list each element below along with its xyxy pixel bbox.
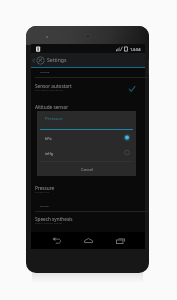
button[interactable]: hPa [37, 132, 136, 147]
button[interactable]: Cancel [37, 162, 136, 176]
button[interactable]: Back [50, 234, 63, 247]
staticText: inHg [45, 151, 54, 156]
staticText: Pressure [45, 115, 63, 121]
staticText: Altitude sensor [35, 104, 69, 110]
staticText: Pressure [35, 185, 55, 191]
button[interactable]: inHg [37, 147, 136, 162]
button[interactable]: Settings [31, 53, 145, 67]
button[interactable]: Pressure [31, 185, 145, 202]
staticText: 14:04 [130, 47, 141, 53]
staticText: SOUND [40, 204, 49, 207]
staticText: Cancel [81, 167, 93, 172]
button[interactable]: Recent apps [114, 234, 127, 247]
staticText: SENSOR [40, 70, 50, 73]
staticText: Speech synthesis [35, 216, 73, 222]
staticText: Start sensor automatically [35, 89, 64, 92]
staticText: Speech synthesis altitude [35, 222, 63, 225]
staticText: hPa [45, 136, 52, 141]
button[interactable]: Speech synthesis [31, 216, 145, 233]
button[interactable]: Home [82, 234, 95, 247]
button[interactable]: Sensor autostart [31, 83, 145, 100]
staticText: Sensor autostart [35, 83, 72, 89]
staticText: Pressure unit [35, 191, 50, 194]
button[interactable]: Altitude sensor [31, 104, 145, 116]
staticText: Settings [47, 57, 67, 64]
